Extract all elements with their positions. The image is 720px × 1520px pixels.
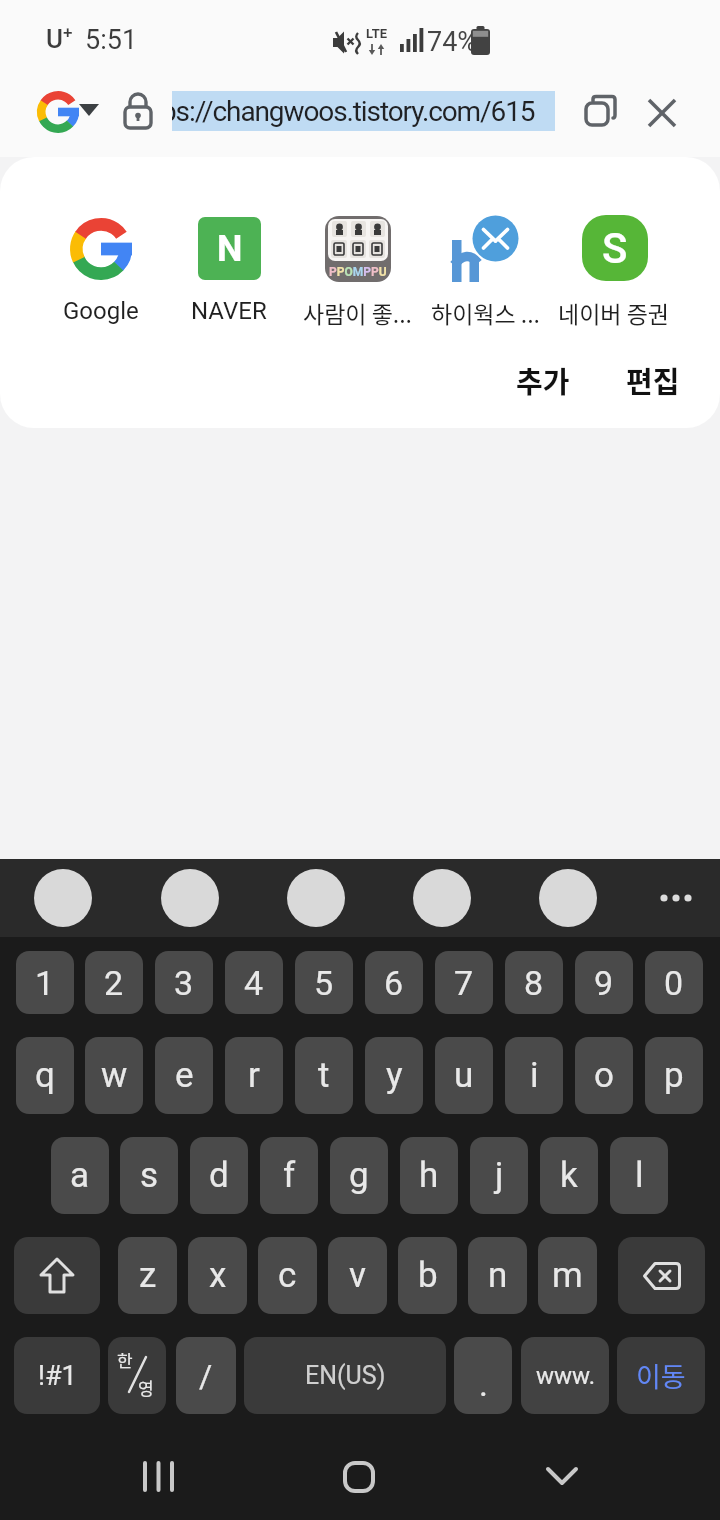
- staticText: t: [318, 1055, 330, 1096]
- button[interactable]: EN(US): [244, 1337, 446, 1414]
- button[interactable]: /: [176, 1337, 236, 1414]
- button[interactable]: [413, 869, 471, 927]
- staticText: k: [560, 1155, 578, 1196]
- button[interactable]: [161, 869, 219, 927]
- button[interactable]: [69, 217, 133, 281]
- staticText: 한: [117, 1347, 133, 1372]
- button[interactable]: [14, 1237, 100, 1314]
- button[interactable]: www.: [521, 1337, 609, 1414]
- button[interactable]: k: [540, 1137, 598, 1214]
- staticText: 2: [104, 963, 124, 1003]
- staticText: y: [386, 1055, 403, 1096]
- button[interactable]: [618, 1237, 705, 1314]
- button[interactable]: [648, 99, 676, 127]
- staticText: i: [530, 1055, 539, 1096]
- staticText: w: [101, 1055, 128, 1096]
- button[interactable]: [584, 95, 618, 127]
- button[interactable]: 2: [85, 951, 143, 1014]
- button[interactable]: w: [85, 1037, 143, 1114]
- staticText: Google: [63, 297, 139, 325]
- button[interactable]: [343, 1461, 375, 1493]
- staticText: d: [209, 1155, 229, 1196]
- staticText: 8: [524, 963, 544, 1003]
- button[interactable]: x: [188, 1237, 247, 1314]
- staticText: z: [139, 1255, 157, 1296]
- button[interactable]: p: [645, 1037, 703, 1114]
- button[interactable]: l: [610, 1137, 668, 1214]
- button[interactable]: 추가: [505, 358, 581, 402]
- button[interactable]: PPOMPPU: [325, 216, 391, 282]
- staticText: N: [217, 228, 243, 270]
- button[interactable]: u: [435, 1037, 493, 1114]
- staticText: +: [63, 22, 73, 42]
- button[interactable]: N: [198, 217, 261, 280]
- button[interactable]: 5: [295, 951, 353, 1014]
- button[interactable]: [660, 890, 692, 906]
- button[interactable]: 편집: [615, 358, 691, 402]
- staticText: 6: [384, 963, 404, 1003]
- button[interactable]: y: [365, 1037, 423, 1114]
- button[interactable]: [546, 1466, 578, 1486]
- button[interactable]: [287, 869, 345, 927]
- staticText: !#1: [38, 1360, 77, 1392]
- button[interactable]: r: [225, 1037, 283, 1114]
- button[interactable]: 1: [16, 951, 74, 1014]
- button[interactable]: 0: [645, 951, 703, 1014]
- button[interactable]: 한: [108, 1337, 166, 1414]
- staticText: x: [209, 1255, 227, 1296]
- button[interactable]: e: [155, 1037, 213, 1114]
- staticText: l: [635, 1155, 644, 1196]
- button[interactable]: m: [538, 1237, 597, 1314]
- button[interactable]: 4: [225, 951, 283, 1014]
- staticText: 사람이 좋...: [303, 296, 412, 326]
- button[interactable]: [34, 869, 92, 927]
- button[interactable]: z: [118, 1237, 177, 1314]
- button[interactable]: 6: [365, 951, 423, 1014]
- staticText: v: [349, 1255, 366, 1296]
- button[interactable]: 8: [505, 951, 563, 1014]
- button[interactable]: o: [575, 1037, 633, 1114]
- button[interactable]: [450, 213, 520, 283]
- button[interactable]: S: [582, 215, 648, 281]
- button[interactable]: v: [328, 1237, 387, 1314]
- staticText: S: [602, 224, 628, 273]
- button[interactable]: s: [120, 1137, 178, 1214]
- button[interactable]: 7: [435, 951, 493, 1014]
- button[interactable]: [143, 1461, 175, 1493]
- button[interactable]: ps://changwoos.tistory.com/615: [172, 91, 555, 131]
- staticText: 영: [138, 1375, 154, 1400]
- button[interactable]: [539, 869, 597, 927]
- button[interactable]: d: [190, 1137, 248, 1214]
- staticText: LTE: [366, 26, 388, 41]
- staticText: p: [664, 1055, 684, 1096]
- button[interactable]: i: [505, 1037, 563, 1114]
- button[interactable]: !#1: [14, 1337, 100, 1414]
- staticText: 4: [244, 963, 264, 1003]
- button[interactable]: 9: [575, 951, 633, 1014]
- button[interactable]: .: [454, 1337, 512, 1414]
- button[interactable]: f: [260, 1137, 318, 1214]
- staticText: ps://changwoos.tistory.com/615: [172, 95, 535, 128]
- button[interactable]: a: [51, 1137, 109, 1214]
- button[interactable]: j: [470, 1137, 528, 1214]
- staticText: 추가: [516, 359, 570, 401]
- staticText: EN(US): [305, 1361, 386, 1390]
- staticText: s: [140, 1155, 159, 1196]
- button[interactable]: [36, 90, 80, 134]
- staticText: o: [594, 1055, 614, 1096]
- staticText: m: [552, 1255, 583, 1296]
- button[interactable]: c: [258, 1237, 317, 1314]
- button[interactable]: 3: [155, 951, 213, 1014]
- staticText: www.: [536, 1362, 595, 1390]
- staticText: j: [495, 1155, 504, 1196]
- button[interactable]: n: [468, 1237, 527, 1314]
- button[interactable]: b: [398, 1237, 457, 1314]
- button[interactable]: 이동: [617, 1337, 705, 1414]
- staticText: 1: [35, 963, 55, 1003]
- button[interactable]: g: [330, 1137, 388, 1214]
- staticText: e: [175, 1055, 194, 1096]
- button[interactable]: q: [16, 1037, 74, 1114]
- button[interactable]: h: [400, 1137, 458, 1214]
- staticText: NAVER: [191, 297, 267, 325]
- button[interactable]: t: [295, 1037, 353, 1114]
